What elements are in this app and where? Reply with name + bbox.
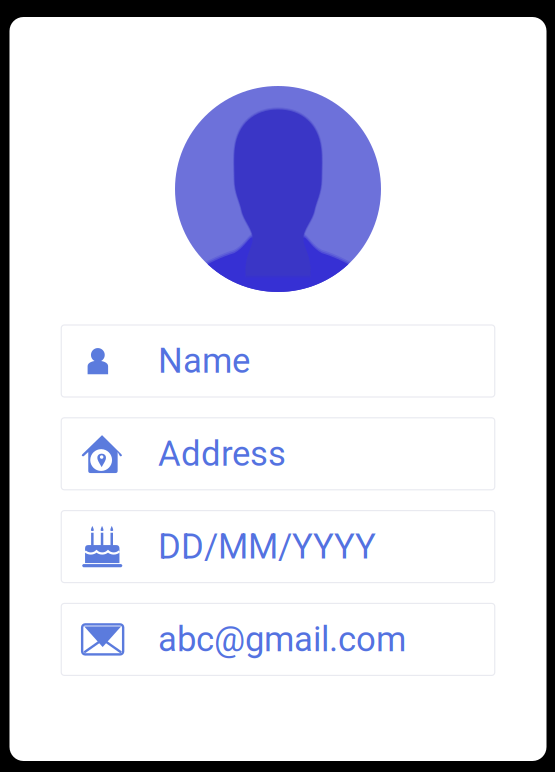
- button[interactable]: DD/MM/YYYY: [61, 511, 495, 583]
- button[interactable]: abc@gmail.com: [61, 603, 495, 675]
- staticText: DD/MM/YYYY: [158, 526, 376, 567]
- staticText: Address: [158, 433, 286, 474]
- staticText: Name: [158, 341, 250, 381]
- button[interactable]: Name: [61, 325, 495, 397]
- button[interactable]: Address: [61, 418, 495, 490]
- staticText: abc@gmail.com: [158, 619, 406, 660]
